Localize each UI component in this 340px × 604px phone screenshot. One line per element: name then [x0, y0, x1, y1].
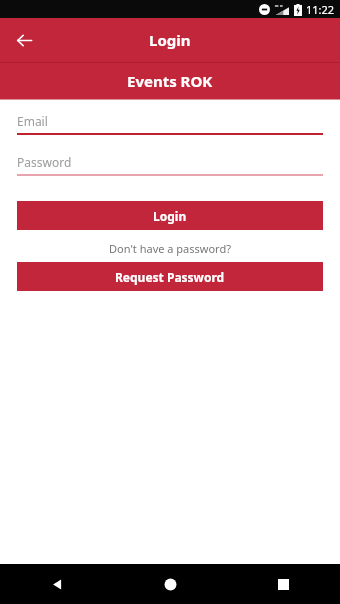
button[interactable]: Back	[0, 564, 114, 604]
staticText: Email	[17, 113, 48, 129]
staticText: Request Password	[115, 269, 225, 285]
staticText: Don't have a password?	[109, 241, 231, 256]
button[interactable]: Email	[17, 110, 323, 135]
staticText: Login	[153, 208, 187, 224]
staticText: Password	[17, 154, 72, 170]
button[interactable]: Recent apps	[227, 564, 340, 604]
button[interactable]: Home	[114, 564, 227, 604]
button[interactable]: Request Password	[17, 262, 323, 291]
button[interactable]: Login	[17, 201, 323, 230]
staticText: Events ROK	[127, 71, 213, 91]
staticText: Login	[149, 30, 191, 50]
button[interactable]: Back	[8, 24, 40, 56]
button[interactable]: Password	[17, 151, 323, 176]
staticText: 11:22	[306, 2, 335, 17]
